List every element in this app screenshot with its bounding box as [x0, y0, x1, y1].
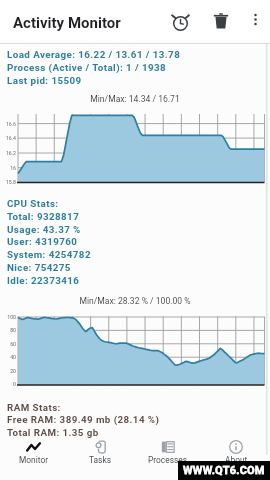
staticText: 16: [0, 165, 16, 171]
staticText: About: [225, 455, 248, 465]
staticText: Idle: 22373416: [7, 275, 80, 286]
staticText: Last pid: 15509: [7, 75, 82, 86]
staticText: 16.6: [0, 121, 16, 127]
staticText: Monitor: [19, 455, 49, 465]
staticText: Min/Max: 14.34 / 16.71: [0, 94, 270, 104]
staticText: 40: [0, 354, 16, 360]
staticText: Usage: 43.37 %: [7, 224, 81, 235]
button[interactable]: Tasks: [67, 436, 134, 480]
staticText: Total RAM: 1.35 gb: [7, 427, 99, 438]
button[interactable]: Monitor: [0, 436, 67, 480]
button[interactable]: Delete: [205, 5, 237, 37]
staticText: 16.2: [0, 150, 16, 156]
staticText: 16.4: [0, 135, 16, 141]
staticText: 20: [0, 368, 16, 374]
staticText: 80: [0, 327, 16, 333]
button[interactable]: More options: [241, 5, 270, 34]
staticText: System: 4254782: [7, 249, 91, 260]
staticText: Processes: [148, 455, 188, 465]
staticText: User: 4319760: [7, 236, 78, 247]
button[interactable]: Processes: [134, 436, 202, 480]
staticText: Activity Monitor: [13, 14, 121, 32]
staticText: 60: [0, 341, 16, 347]
staticText: CPU Stats:: [7, 198, 59, 209]
button[interactable]: Timer: [164, 5, 196, 37]
staticText: Free RAM: 389.49 mb (28.14 %): [7, 414, 160, 425]
staticText: Tasks: [89, 455, 112, 465]
staticText: 0: [0, 381, 16, 387]
staticText: 100: [0, 314, 16, 320]
staticText: WWW.QT6.COM: [183, 464, 265, 477]
staticText: RAM Stats:: [7, 402, 61, 413]
staticText: Load Average: 16.22 / 13.61 / 13.78: [7, 49, 181, 60]
staticText: Min/Max: 28.32 % / 100.00 %: [0, 296, 270, 306]
staticText: Nice: 754275: [7, 262, 71, 273]
button[interactable]: About: [202, 436, 270, 480]
staticText: 15.8: [0, 179, 16, 185]
staticText: Process (Active / Total): 1 / 1938: [7, 62, 167, 73]
staticText: Total: 9328817: [7, 211, 80, 222]
